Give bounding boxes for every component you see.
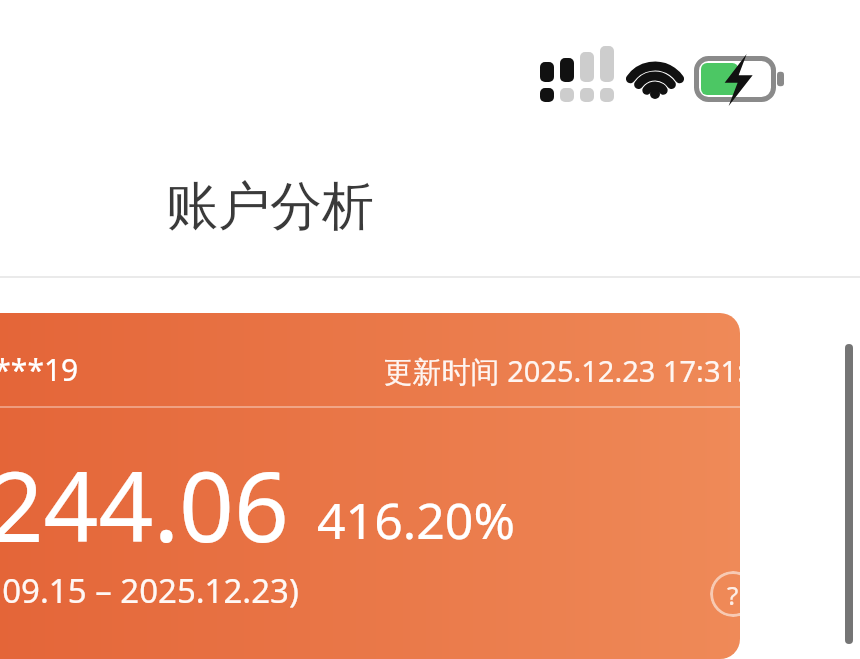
staticText: (2025.09.15 – 2025.12.23) — [0, 568, 299, 613]
button[interactable]: 帮助 — [710, 571, 740, 617]
staticText: 3,244.06 — [0, 439, 289, 570]
staticText: 416.20% — [317, 486, 515, 554]
staticText: ? — [727, 577, 739, 612]
staticText: 账户分析 — [166, 174, 374, 240]
button[interactable]: 尾号 ****19 — [0, 313, 740, 659]
staticText: 更新时间 2025.12.23 17:31:22 — [300, 351, 740, 391]
staticText: 尾号 ****19 — [0, 349, 79, 390]
